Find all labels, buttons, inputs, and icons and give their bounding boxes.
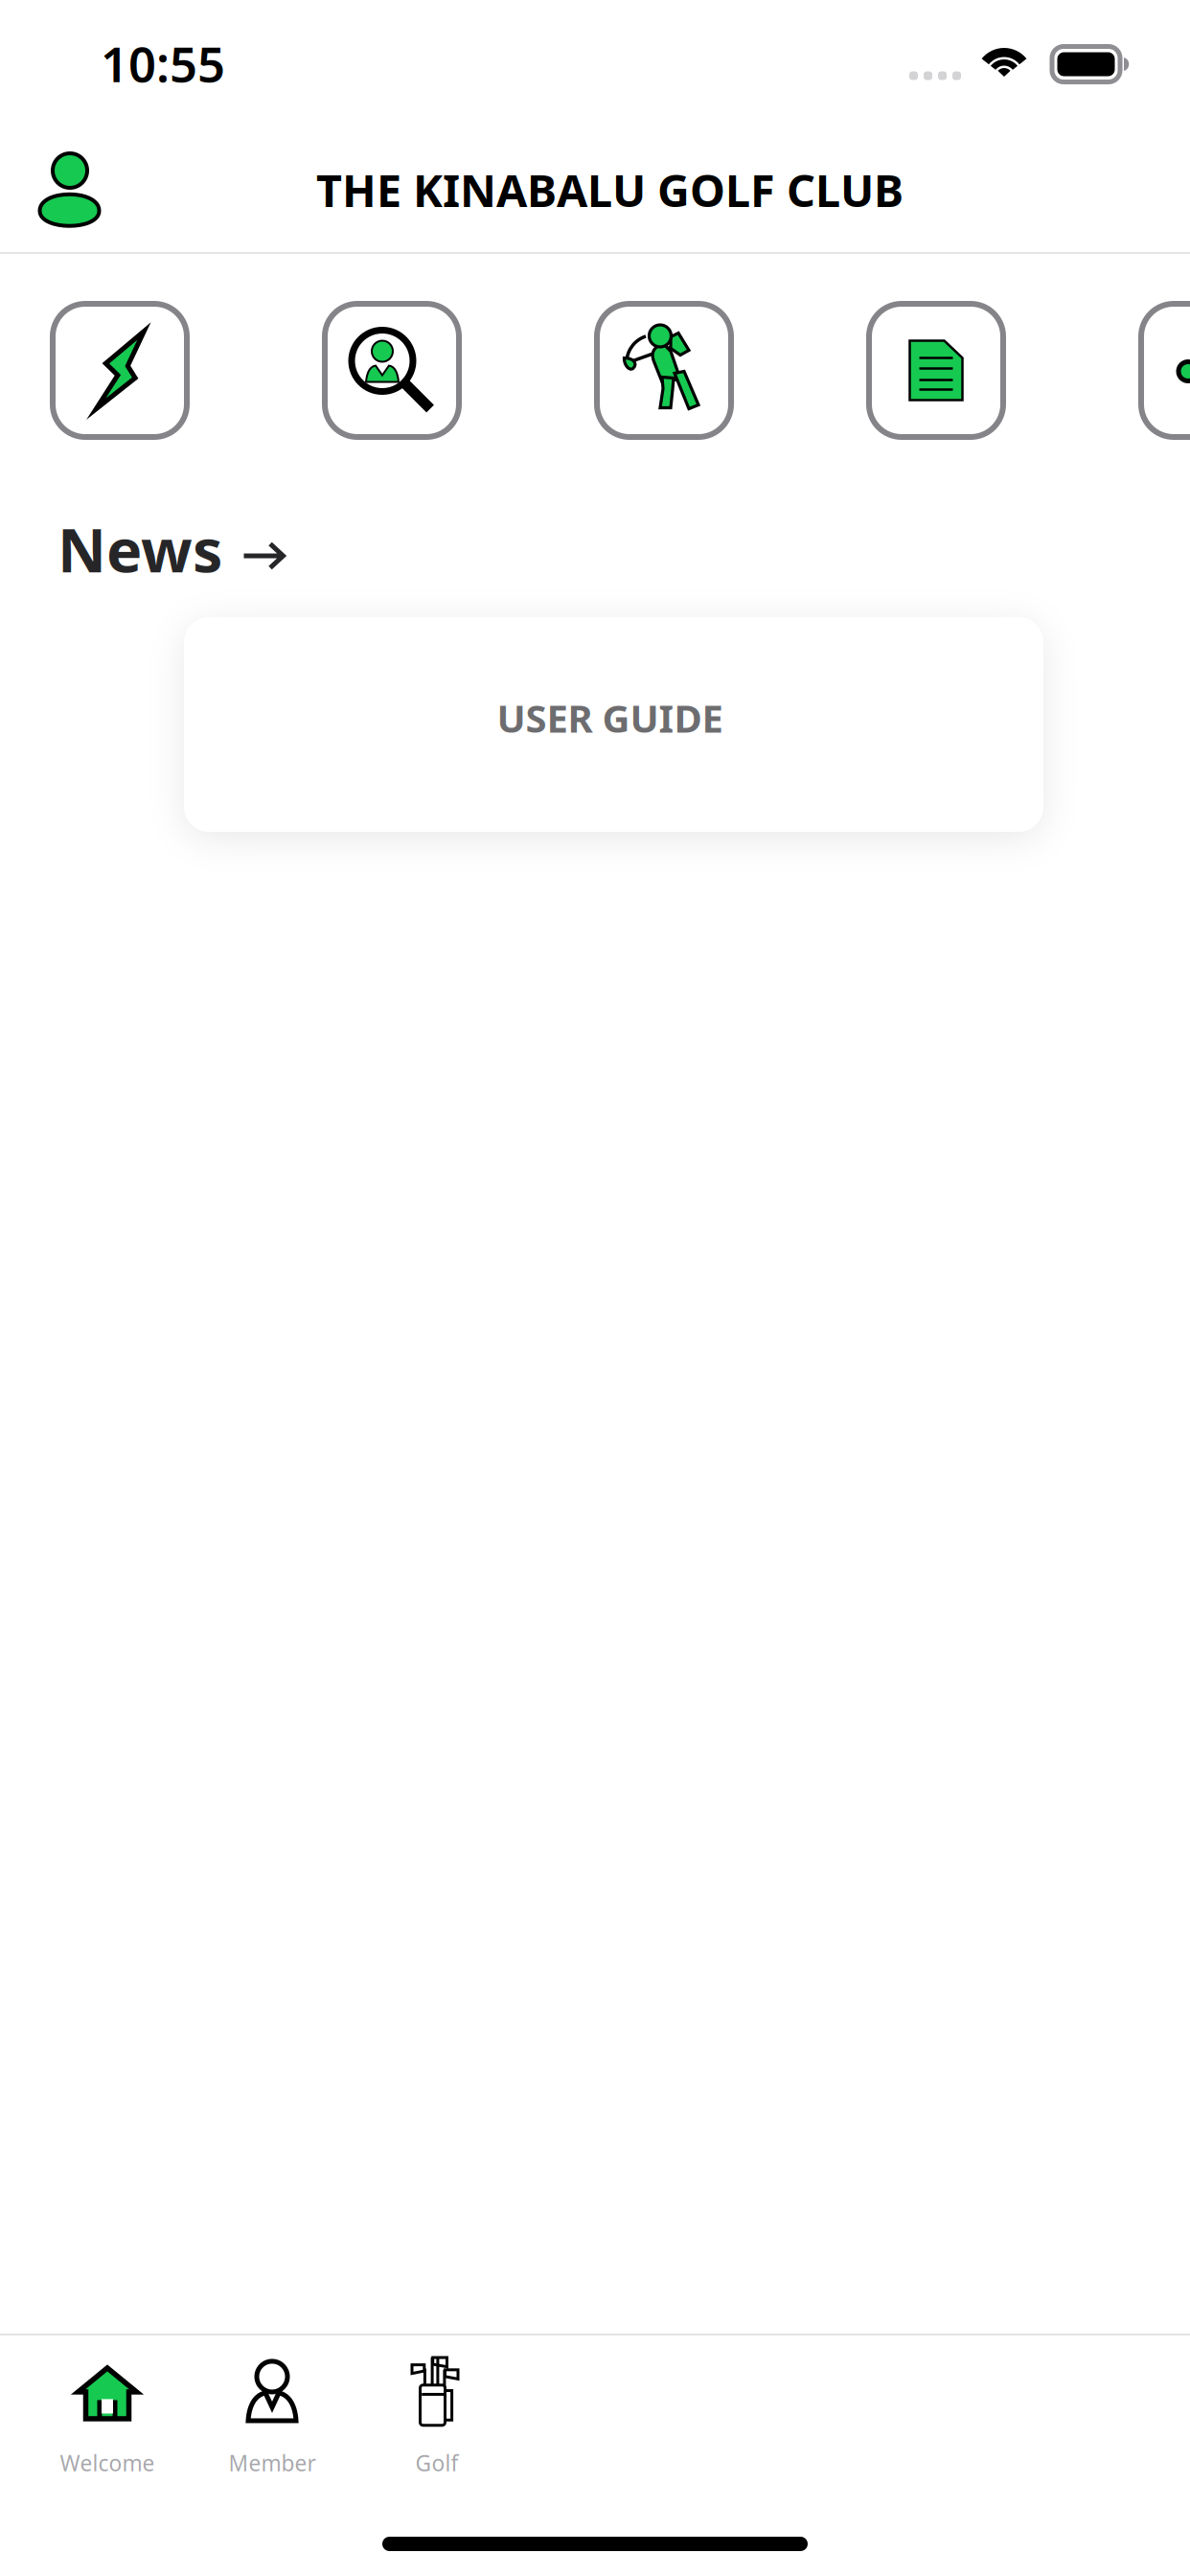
button[interactable]: Welcome bbox=[25, 2361, 190, 2476]
button[interactable]: Member bbox=[190, 2361, 355, 2476]
staticText: Welcome bbox=[60, 2448, 155, 2477]
button[interactable]: Find Member bbox=[322, 301, 462, 440]
staticText: THE KINABALU GOLF CLUB bbox=[316, 160, 904, 219]
button[interactable]: USER GUIDE bbox=[184, 617, 1043, 832]
button[interactable]: Documents bbox=[866, 301, 1006, 440]
button[interactable]: More bbox=[1138, 301, 1190, 440]
button[interactable]: Profile bbox=[12, 126, 126, 252]
staticText: Member bbox=[229, 2448, 316, 2477]
staticText: Golf bbox=[415, 2448, 458, 2477]
button[interactable]: News bbox=[57, 521, 286, 577]
staticText: News bbox=[57, 509, 222, 589]
button[interactable]: Tee Times bbox=[594, 301, 734, 440]
button[interactable]: Quick Actions bbox=[50, 301, 190, 440]
staticText: USER GUIDE bbox=[497, 692, 723, 743]
staticText: 10:55 bbox=[101, 31, 225, 96]
button[interactable]: Golf bbox=[355, 2361, 519, 2476]
